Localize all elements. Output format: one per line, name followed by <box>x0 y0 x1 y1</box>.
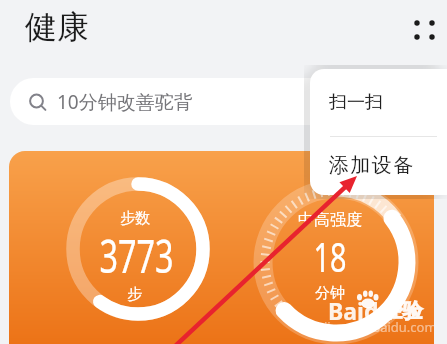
button[interactable]: 扫一扫 <box>310 69 447 136</box>
staticText: 健康 <box>25 7 89 47</box>
staticText: 3773 <box>99 225 174 285</box>
staticText: 扫一扫 <box>329 91 383 114</box>
staticText: 添加设备 <box>328 153 414 178</box>
staticText: Baidu <box>328 295 394 326</box>
staticText: 步 <box>127 285 142 304</box>
staticText: 经验 <box>383 298 423 323</box>
button[interactable]: 步数 <box>9 151 434 344</box>
button[interactable] <box>403 10 445 50</box>
staticText: 10分钟改善驼背 <box>57 89 193 115</box>
button[interactable]: 10分钟改善驼背 <box>10 78 437 125</box>
staticText: jingyan.baidu.com <box>324 318 434 336</box>
staticText: 18 <box>313 229 346 283</box>
staticText: 分钟 <box>315 284 345 303</box>
staticText: 步数 <box>120 209 150 228</box>
staticText: 中高强度 <box>298 210 362 230</box>
button[interactable]: 添加设备 <box>310 137 447 194</box>
